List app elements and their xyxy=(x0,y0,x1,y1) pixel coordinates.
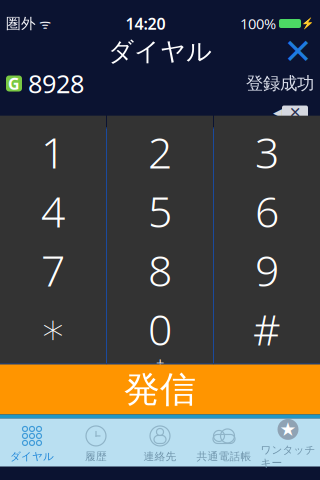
staticText: + xyxy=(156,353,164,373)
button[interactable]: 削除 xyxy=(273,97,320,127)
staticText: 14:20 xyxy=(125,13,165,34)
button[interactable]: 3 xyxy=(214,128,320,186)
staticText: 5 xyxy=(148,183,172,239)
staticText: 1 xyxy=(41,124,65,180)
staticText: 0 xyxy=(148,301,172,357)
staticText: 履歴 xyxy=(85,450,107,463)
button[interactable]: 1 xyxy=(0,128,106,186)
staticText: ⚡ xyxy=(301,17,314,30)
staticText: 圏外 xyxy=(6,14,36,32)
staticText: 6 xyxy=(255,183,279,239)
staticText: 8928 xyxy=(28,67,84,100)
staticText: 連絡先 xyxy=(143,450,176,463)
button[interactable]: ∗ xyxy=(0,305,106,363)
button[interactable]: 発信 xyxy=(0,364,320,414)
button[interactable]: # xyxy=(214,305,320,363)
staticText: 発信 xyxy=(124,367,196,412)
staticText: ✕ xyxy=(283,32,312,71)
staticText: G xyxy=(8,73,20,94)
staticText: ワンタッチキー xyxy=(260,443,315,470)
button[interactable]: 閉じる xyxy=(276,34,320,68)
staticText: 2 xyxy=(148,124,172,180)
staticText: ᯤ xyxy=(36,15,51,32)
button[interactable]: ★ xyxy=(256,418,320,466)
button[interactable]: 6 xyxy=(214,187,320,245)
button[interactable]: 0 xyxy=(107,305,213,363)
staticText: ◀ xyxy=(273,106,282,119)
staticText: 7 xyxy=(41,242,65,298)
staticText: 共通電話帳 xyxy=(196,450,251,463)
staticText: 4 xyxy=(41,183,65,239)
staticText: 100% xyxy=(240,14,276,33)
button[interactable]: 連絡先 xyxy=(128,418,192,466)
button[interactable]: 4 xyxy=(0,187,106,245)
button[interactable]: 履歴 xyxy=(64,418,128,466)
staticText: 3 xyxy=(255,124,279,180)
staticText: ダイヤル xyxy=(10,450,54,463)
staticText: ダイヤル xyxy=(108,36,212,67)
staticText: 登録成功 xyxy=(246,73,314,94)
button[interactable]: ダイヤル xyxy=(0,418,64,466)
staticText: ✕ xyxy=(289,104,301,121)
button[interactable]: 9 xyxy=(214,246,320,304)
staticText: 9 xyxy=(255,242,279,298)
button[interactable]: 8 xyxy=(107,246,213,304)
button[interactable]: 2 xyxy=(107,128,213,186)
button[interactable]: 7 xyxy=(0,246,106,304)
staticText: 8 xyxy=(148,242,172,298)
button[interactable]: 共通電話帳 xyxy=(192,418,256,466)
button[interactable]: 5 xyxy=(107,187,213,245)
staticText: ∗ xyxy=(39,305,66,353)
staticText: ★ xyxy=(279,419,296,440)
staticText: # xyxy=(253,301,281,357)
